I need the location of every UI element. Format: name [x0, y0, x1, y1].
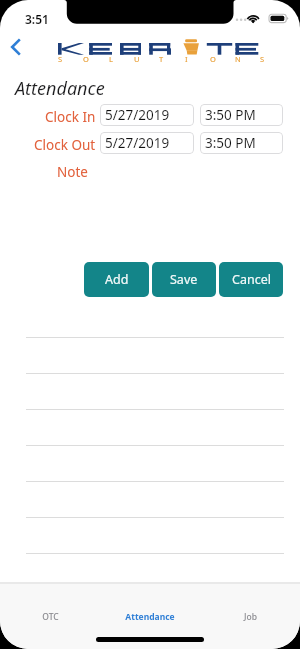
- staticText: N: [235, 54, 241, 64]
- staticText: Clock Out: [34, 136, 96, 154]
- staticText: 3:50 PM: [205, 134, 256, 152]
- button[interactable]: Save: [152, 262, 216, 297]
- staticText: Save: [170, 271, 198, 288]
- staticText: S: [58, 54, 63, 64]
- staticText: O: [210, 54, 216, 64]
- staticText: Cancel: [232, 271, 271, 288]
- button[interactable]: Cancel: [219, 262, 283, 297]
- staticText: Note: [57, 163, 88, 181]
- button[interactable]: 3:50 PM: [200, 132, 283, 154]
- staticText: Clock In: [45, 108, 96, 126]
- staticText: Job: [244, 611, 257, 623]
- button[interactable]: 5/27/2019: [100, 132, 194, 154]
- staticText: L: [109, 54, 113, 64]
- staticText: Attendance: [15, 76, 105, 101]
- button[interactable]: OTC: [0, 609, 100, 625]
- staticText: 5/27/2019: [105, 106, 170, 124]
- staticText: O: [83, 54, 89, 64]
- button[interactable]: 3:50 PM: [200, 104, 283, 126]
- staticText: I: [185, 54, 188, 64]
- button[interactable]: Job: [200, 609, 300, 625]
- staticText: T: [159, 54, 164, 64]
- button[interactable]: Attendance: [100, 609, 200, 625]
- button[interactable]: 5/27/2019: [100, 104, 194, 126]
- button[interactable]: Back: [2, 33, 30, 61]
- staticText: Attendance: [125, 611, 175, 623]
- staticText: 3:50 PM: [205, 106, 256, 124]
- staticText: 5/27/2019: [105, 134, 170, 152]
- staticText: S: [260, 54, 265, 64]
- button[interactable]: Add: [84, 262, 149, 297]
- staticText: U: [134, 54, 140, 64]
- staticText: Add: [105, 271, 129, 288]
- staticText: OTC: [42, 611, 59, 623]
- staticText: 3:51: [25, 11, 49, 27]
